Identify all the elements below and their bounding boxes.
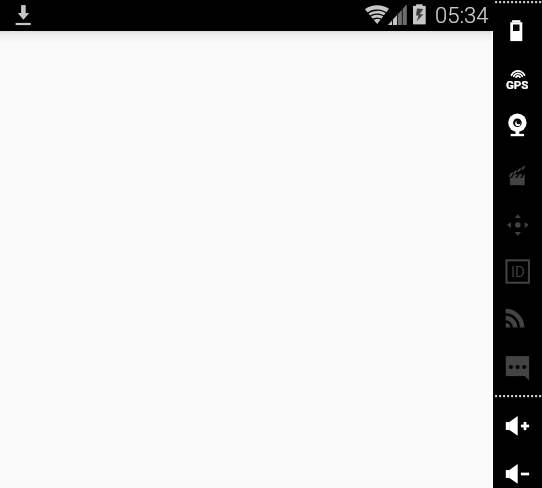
button[interactable]: Battery bbox=[493, 16, 542, 62]
button[interactable]: Camera bbox=[493, 108, 542, 144]
button[interactable]: Directional pad bbox=[493, 206, 542, 244]
button[interactable]: Device ID bbox=[493, 256, 542, 288]
staticText: ID bbox=[511, 263, 525, 281]
staticText: 05:34 bbox=[435, 3, 489, 29]
button[interactable]: Volume up bbox=[493, 410, 542, 442]
button[interactable]: GPS bbox=[493, 62, 542, 92]
button[interactable]: Cellular data bbox=[493, 303, 542, 333]
button[interactable]: Record video bbox=[493, 160, 542, 190]
button[interactable]: Messages bbox=[493, 352, 542, 384]
staticText: GPS bbox=[506, 78, 529, 91]
button[interactable]: Download in progress bbox=[6, 0, 40, 31]
button[interactable]: Volume down bbox=[493, 458, 542, 488]
